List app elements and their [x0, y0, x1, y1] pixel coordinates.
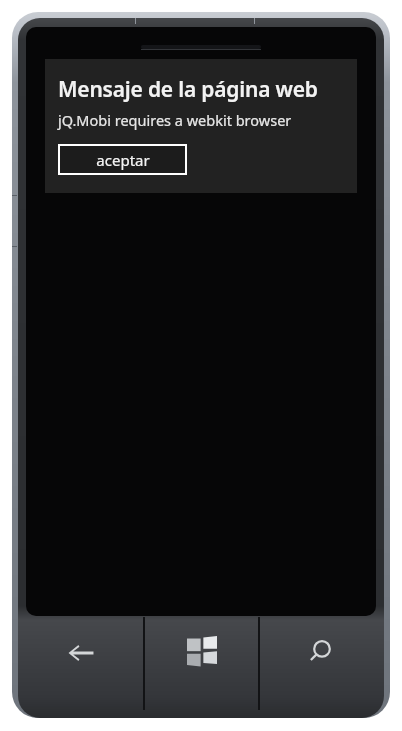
staticText: Mensaje de la página web [58, 75, 318, 104]
button[interactable]: Back [18, 617, 143, 718]
staticText: jQ.Mobi requires a webkit browser [58, 110, 292, 130]
button[interactable]: Search [260, 617, 384, 718]
button[interactable]: aceptar [58, 144, 187, 175]
staticText: aceptar [96, 150, 150, 170]
button[interactable]: Start [145, 617, 258, 718]
